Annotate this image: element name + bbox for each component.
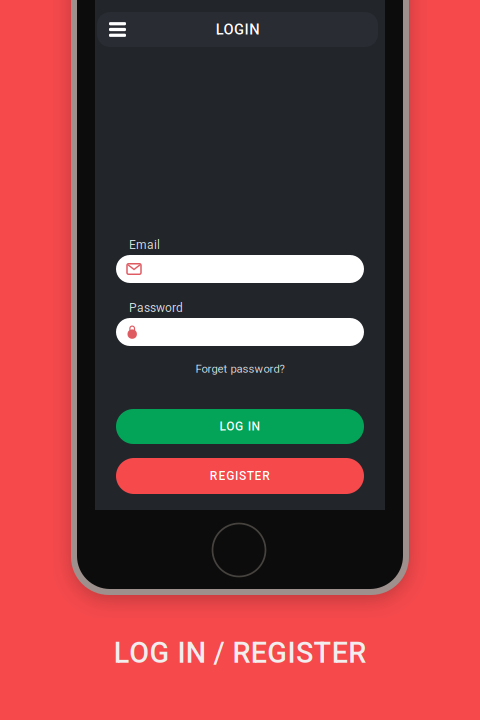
button[interactable]: LOG IN: [116, 409, 364, 444]
staticText: LOGIN: [216, 21, 259, 38]
staticText: LOG IN: [219, 419, 260, 434]
staticText: REGISTER: [210, 469, 270, 483]
button[interactable]: Menu: [100, 12, 135, 47]
button[interactable]: Forget password?: [116, 360, 364, 378]
button[interactable]: [116, 318, 364, 346]
staticText: Forget password?: [195, 362, 284, 376]
staticText: Password: [129, 301, 183, 315]
staticText: Email: [129, 238, 160, 252]
staticText: LOG IN / REGISTER: [114, 636, 366, 670]
button[interactable]: [116, 255, 364, 283]
button[interactable]: REGISTER: [116, 458, 364, 494]
